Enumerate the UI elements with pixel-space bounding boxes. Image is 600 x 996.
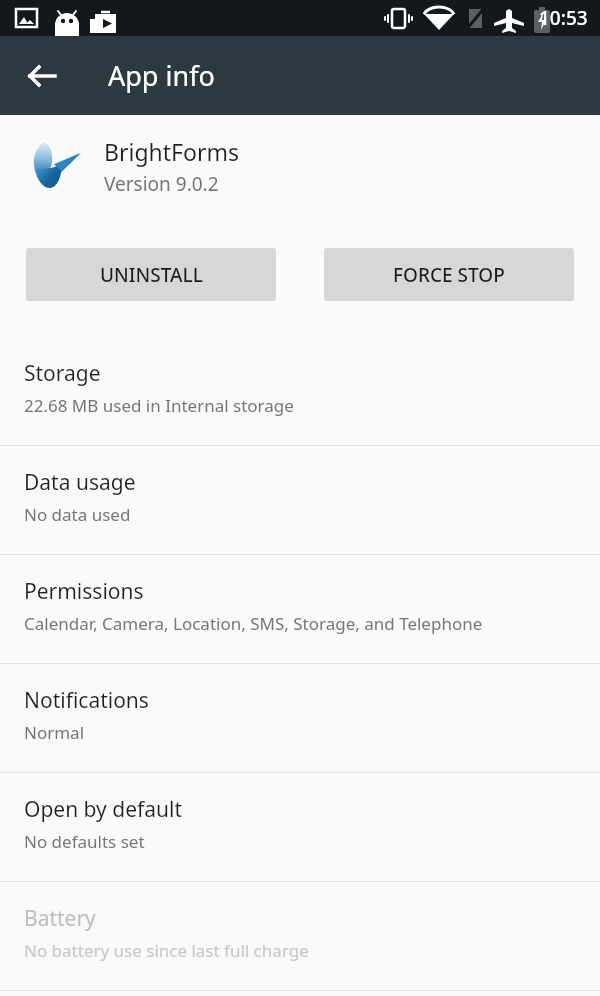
button[interactable]: Open by default xyxy=(0,773,600,881)
staticText: Calendar, Camera, Location, SMS, Storage… xyxy=(24,612,483,635)
staticText: No battery use since last full charge xyxy=(24,939,309,962)
staticText: Open by default xyxy=(24,795,183,824)
button[interactable]: Data usage xyxy=(0,446,600,554)
button[interactable]: Notifications xyxy=(0,664,600,772)
staticText: Version 9.0.2 xyxy=(104,171,219,197)
staticText: Storage xyxy=(24,359,101,388)
staticText: FORCE STOP xyxy=(393,262,505,288)
button[interactable]: Permissions xyxy=(0,555,600,663)
staticText: Notifications xyxy=(24,686,149,715)
staticText: No defaults set xyxy=(24,830,145,853)
button[interactable]: UNINSTALL xyxy=(26,248,276,301)
staticText: UNINSTALL xyxy=(100,262,203,288)
staticText: 22.68 MB used in Internal storage xyxy=(24,394,294,417)
staticText: Battery xyxy=(24,904,96,933)
staticText: No data used xyxy=(24,503,131,526)
staticText: Permissions xyxy=(24,577,144,606)
button[interactable]: Battery xyxy=(0,882,600,990)
staticText: Normal xyxy=(24,721,85,744)
button[interactable]: Back xyxy=(14,48,70,104)
staticText: App info xyxy=(108,57,215,94)
button[interactable]: Storage xyxy=(0,337,600,445)
staticText: BrightForms xyxy=(104,136,239,167)
staticText: Data usage xyxy=(24,468,136,497)
button[interactable]: FORCE STOP xyxy=(324,248,574,301)
staticText: 10:53 xyxy=(539,5,588,31)
